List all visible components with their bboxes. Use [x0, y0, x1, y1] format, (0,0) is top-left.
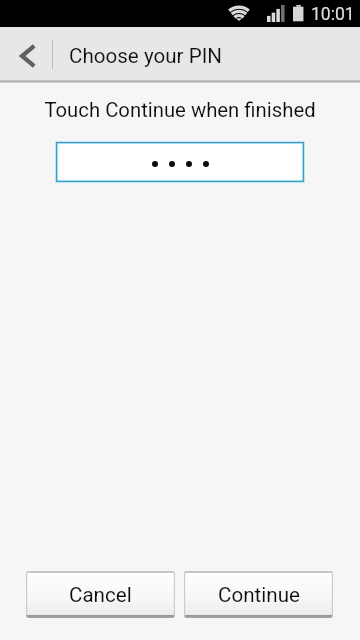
staticText: 10:01 [311, 4, 355, 25]
button[interactable]: Continue [184, 571, 333, 618]
staticText: Choose your PIN [69, 44, 222, 68]
button[interactable]: Cancel [26, 571, 175, 618]
button[interactable] [55, 141, 305, 183]
staticText: Touch Continue when finished [0, 98, 360, 122]
button[interactable]: Back [0, 27, 52, 80]
staticText: Continue [218, 583, 300, 607]
staticText: Cancel [69, 583, 132, 607]
